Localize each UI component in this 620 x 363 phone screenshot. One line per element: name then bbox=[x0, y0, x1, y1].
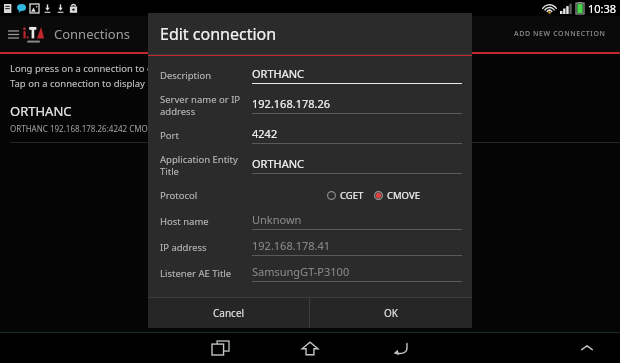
staticText: ORTHANC 192.168.178.26:4242 CMOVE bbox=[10, 123, 157, 134]
staticText: Host name bbox=[160, 215, 252, 228]
button[interactable]: Server name or IP address bbox=[160, 88, 462, 122]
button[interactable]: CMOVE bbox=[374, 189, 420, 202]
button[interactable]: Host name bbox=[160, 208, 462, 234]
staticText: 192.168.178.41 bbox=[252, 238, 331, 253]
staticText: IP address bbox=[160, 241, 252, 254]
staticText: ORTHANC bbox=[252, 66, 305, 81]
staticText: Tap on a connection to display a bbox=[10, 77, 153, 90]
button[interactable]: Back bbox=[383, 335, 417, 361]
button[interactable]: IP address bbox=[160, 234, 462, 260]
staticText: Cancel bbox=[213, 306, 245, 320]
staticText: Port bbox=[160, 129, 252, 142]
staticText: ORTHANC bbox=[252, 156, 305, 171]
staticText: Protocol bbox=[160, 189, 252, 202]
staticText: Edit connection bbox=[160, 23, 277, 45]
staticText: 4242 bbox=[252, 126, 278, 141]
staticText: CMOVE bbox=[387, 189, 420, 202]
staticText: Connections bbox=[54, 25, 130, 43]
staticText: Long press on a connection to edit bbox=[10, 62, 164, 75]
staticText: OK bbox=[384, 306, 398, 320]
button[interactable]: Application Entity Title bbox=[160, 148, 462, 182]
button[interactable]: Open navigation drawer bbox=[4, 25, 22, 43]
staticText: Description bbox=[160, 69, 252, 82]
staticText: Listener AE Title bbox=[160, 267, 252, 280]
button[interactable]: Cancel bbox=[148, 298, 309, 328]
button[interactable]: Home bbox=[293, 335, 327, 361]
button[interactable]: Recent apps bbox=[203, 335, 237, 361]
staticText: CGET bbox=[340, 189, 364, 202]
staticText: Server name or IP address bbox=[160, 93, 252, 117]
staticText: 192.168.178.26 bbox=[252, 96, 331, 111]
button[interactable]: OK bbox=[310, 298, 472, 328]
button[interactable]: Description bbox=[160, 62, 462, 88]
button[interactable]: Listener AE Title bbox=[160, 260, 462, 286]
button[interactable]: Port bbox=[160, 122, 462, 148]
button[interactable]: CGET bbox=[327, 189, 364, 202]
staticText: 10:38 bbox=[588, 1, 617, 16]
staticText: Unknown bbox=[252, 212, 302, 227]
staticText: SamsungGT-P3100 bbox=[252, 264, 350, 279]
staticText: ORTHANC bbox=[10, 102, 72, 120]
button[interactable]: Show more bbox=[580, 341, 594, 355]
staticText: Application Entity Title bbox=[160, 153, 252, 177]
staticText: ADD NEW CONNECTION bbox=[514, 29, 606, 39]
button[interactable]: ADD NEW CONNECTION bbox=[510, 25, 610, 43]
button[interactable]: ORTHANC bbox=[10, 102, 620, 134]
